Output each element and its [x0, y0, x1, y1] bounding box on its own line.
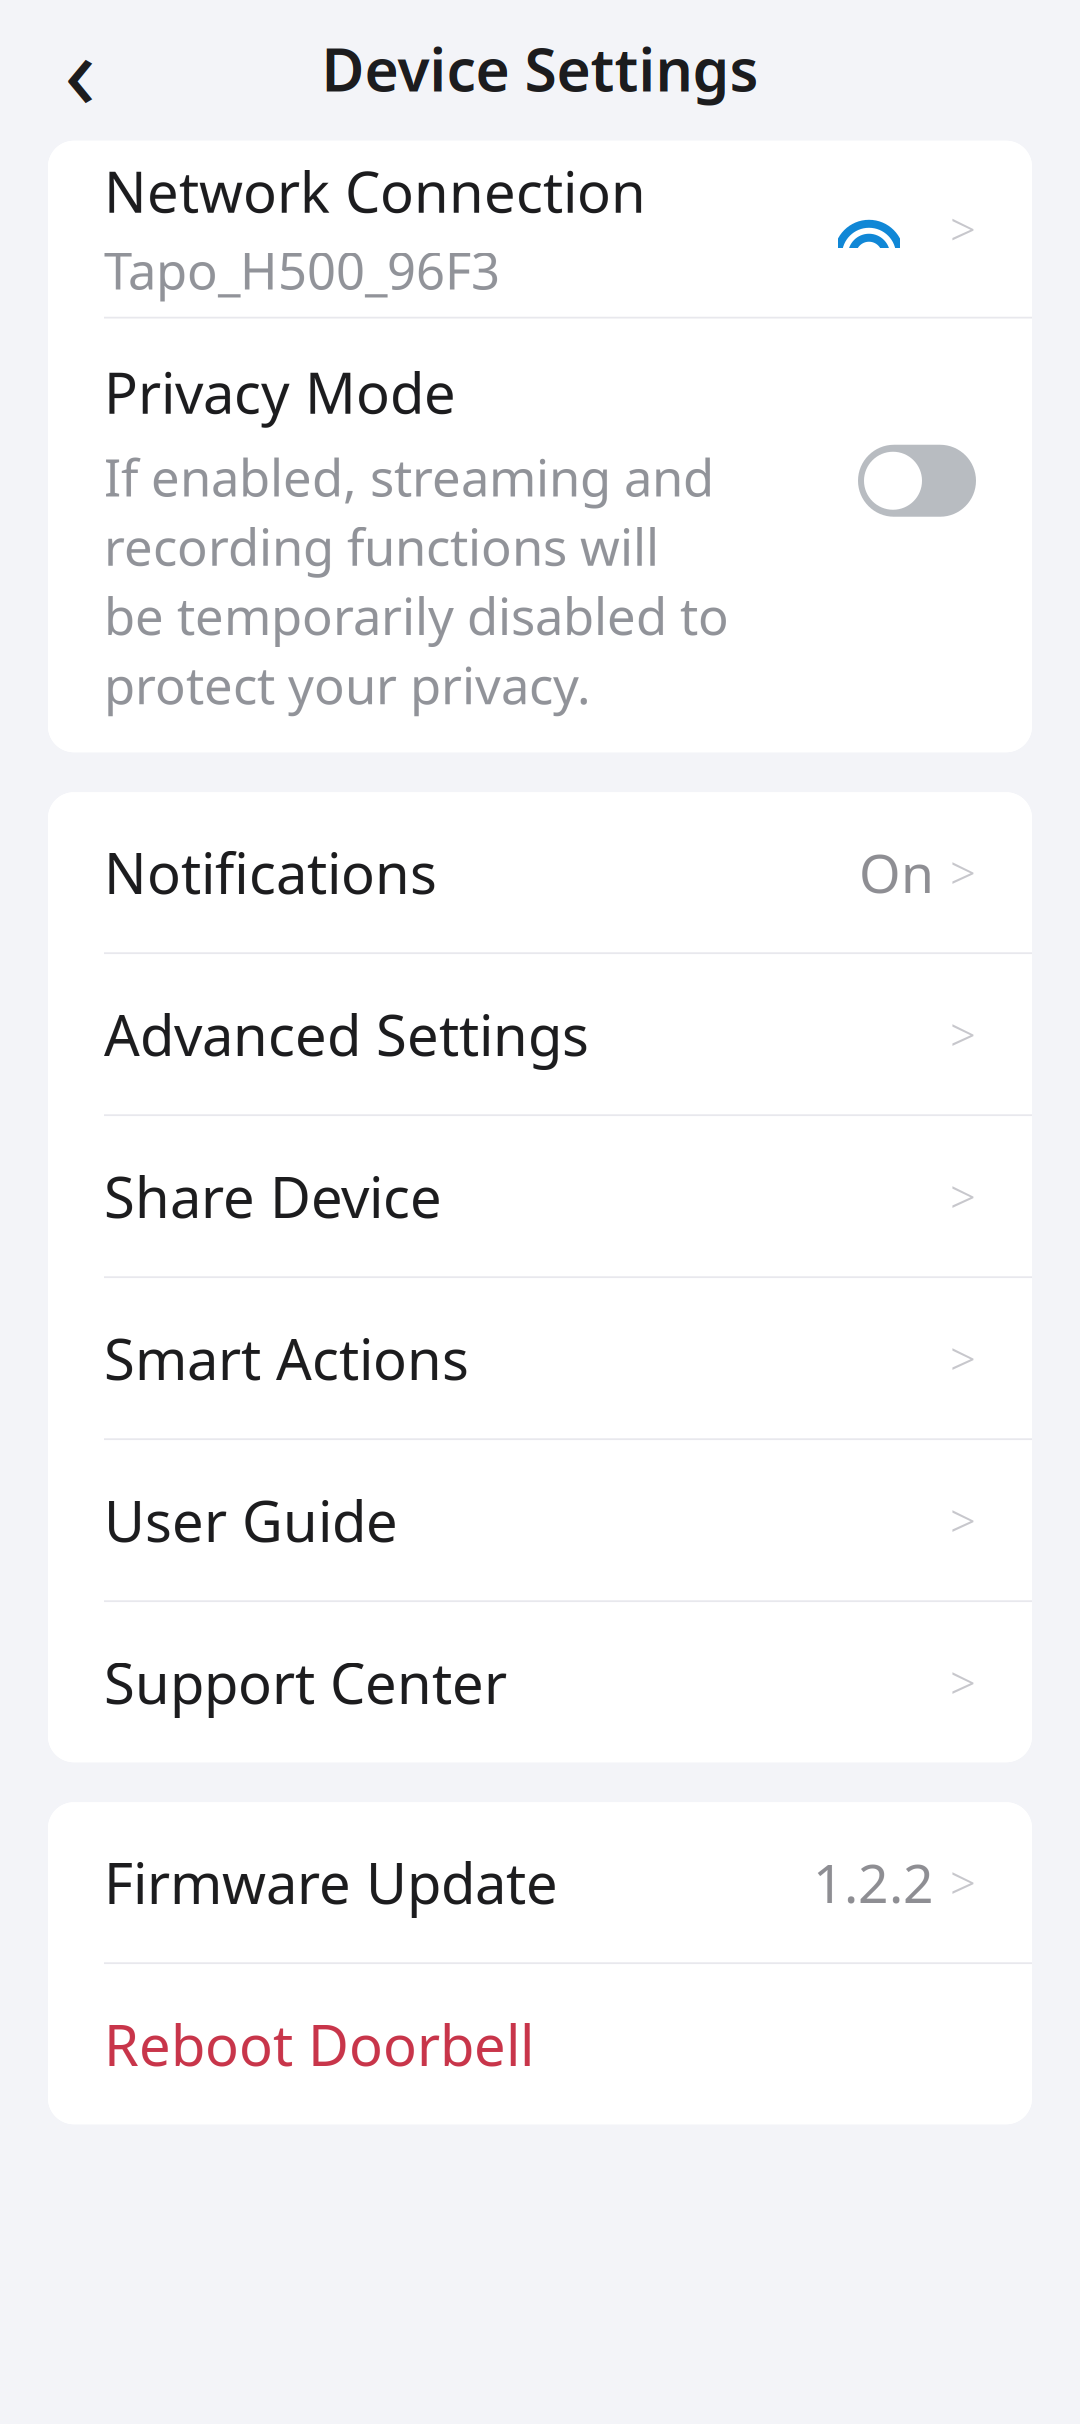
button[interactable]: Privacy Mode: [48, 319, 1032, 752]
staticText: 1.2.2: [813, 1847, 934, 1918]
staticText: >: [950, 842, 976, 902]
staticText: If enabled, streaming and: [104, 443, 714, 510]
button[interactable]: Share Device: [48, 1116, 1032, 1276]
staticText: protect your privacy.: [104, 651, 591, 718]
staticText: Support Center: [104, 1645, 507, 1719]
staticText: be temporarily disabled to: [104, 582, 729, 649]
button[interactable]: Firmware Update: [48, 1802, 1032, 1962]
button[interactable]: Back: [38, 27, 122, 111]
button[interactable]: User Guide: [48, 1440, 1032, 1600]
staticText: Device Settings: [321, 30, 758, 108]
button[interactable]: Advanced Settings: [48, 954, 1032, 1114]
staticText: Firmware Update: [104, 1845, 558, 1919]
staticText: >: [950, 1004, 976, 1064]
staticText: Smart Actions: [104, 1321, 469, 1395]
staticText: >: [950, 1166, 976, 1226]
staticText: Network Connection: [104, 154, 646, 228]
staticText: Share Device: [104, 1159, 442, 1233]
staticText: Notifications: [104, 835, 437, 909]
button[interactable]: Reboot Doorbell: [48, 1964, 1032, 2124]
button[interactable]: Network Connection: [48, 141, 1032, 317]
staticText: >: [950, 1852, 976, 1912]
staticText: Advanced Settings: [104, 997, 589, 1071]
button[interactable]: Smart Actions: [48, 1278, 1032, 1438]
staticText: ‹: [64, 0, 96, 138]
button[interactable]: Notifications: [48, 792, 1032, 952]
staticText: recording functions will: [104, 512, 659, 580]
staticText: >: [950, 1328, 976, 1388]
staticText: >: [950, 1490, 976, 1550]
staticText: >: [950, 199, 976, 259]
staticText: On: [859, 837, 934, 908]
staticText: Privacy Mode: [104, 355, 456, 429]
staticText: User Guide: [104, 1483, 398, 1557]
staticText: Tapo_H500_96F3: [104, 236, 500, 304]
staticText: >: [950, 1652, 976, 1712]
button[interactable]: Support Center: [48, 1602, 1032, 1762]
staticText: Reboot Doorbell: [104, 2007, 534, 2081]
